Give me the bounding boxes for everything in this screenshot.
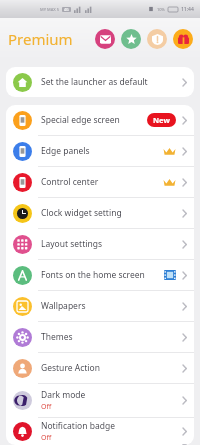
button[interactable]: Info [147, 29, 167, 49]
staticText: Notification badge [41, 420, 115, 432]
staticText: Themes [41, 331, 73, 343]
button[interactable]: Rate us [121, 29, 141, 49]
button[interactable]: Dark mode [6, 384, 194, 417]
staticText: 11:44 [181, 6, 194, 13]
staticText: Off [41, 433, 52, 443]
button[interactable]: Gesture Action [6, 353, 194, 383]
button[interactable]: Control center [6, 167, 194, 197]
staticText: Edge panels [41, 145, 90, 157]
button[interactable]: Edge panels [6, 136, 194, 166]
staticText: 4G [64, 7, 69, 12]
button[interactable]: Layout settings [6, 229, 194, 259]
button[interactable]: Clock widget setting [6, 198, 194, 228]
staticText: Set the launcher as default [41, 76, 148, 88]
staticText: Premium [8, 29, 73, 49]
staticText: MY MAX 5 [40, 7, 60, 12]
staticText: Wallpapers [41, 300, 86, 312]
button[interactable]: Wallpapers [6, 291, 194, 321]
button[interactable]: Notification badge [6, 418, 194, 445]
staticText: New [153, 115, 170, 125]
button[interactable]: Special edge screen [6, 105, 194, 135]
button[interactable]: Set the launcher as default [6, 67, 194, 97]
staticText: Off [41, 402, 52, 412]
button[interactable]: Themes [6, 322, 194, 352]
staticText: Layout settings [41, 238, 102, 250]
staticText: 10% [157, 7, 165, 12]
button[interactable]: Fonts on the home screen [6, 260, 194, 290]
button[interactable]: Gift [173, 29, 193, 49]
staticText: Clock widget setting [41, 207, 122, 219]
staticText: Special edge screen [41, 114, 120, 126]
staticText: Gesture Action [41, 362, 100, 374]
staticText: Control center [41, 176, 99, 188]
button[interactable]: Messages [95, 29, 115, 49]
staticText: Dark mode [41, 389, 86, 401]
staticText: Fonts on the home screen [41, 269, 145, 281]
